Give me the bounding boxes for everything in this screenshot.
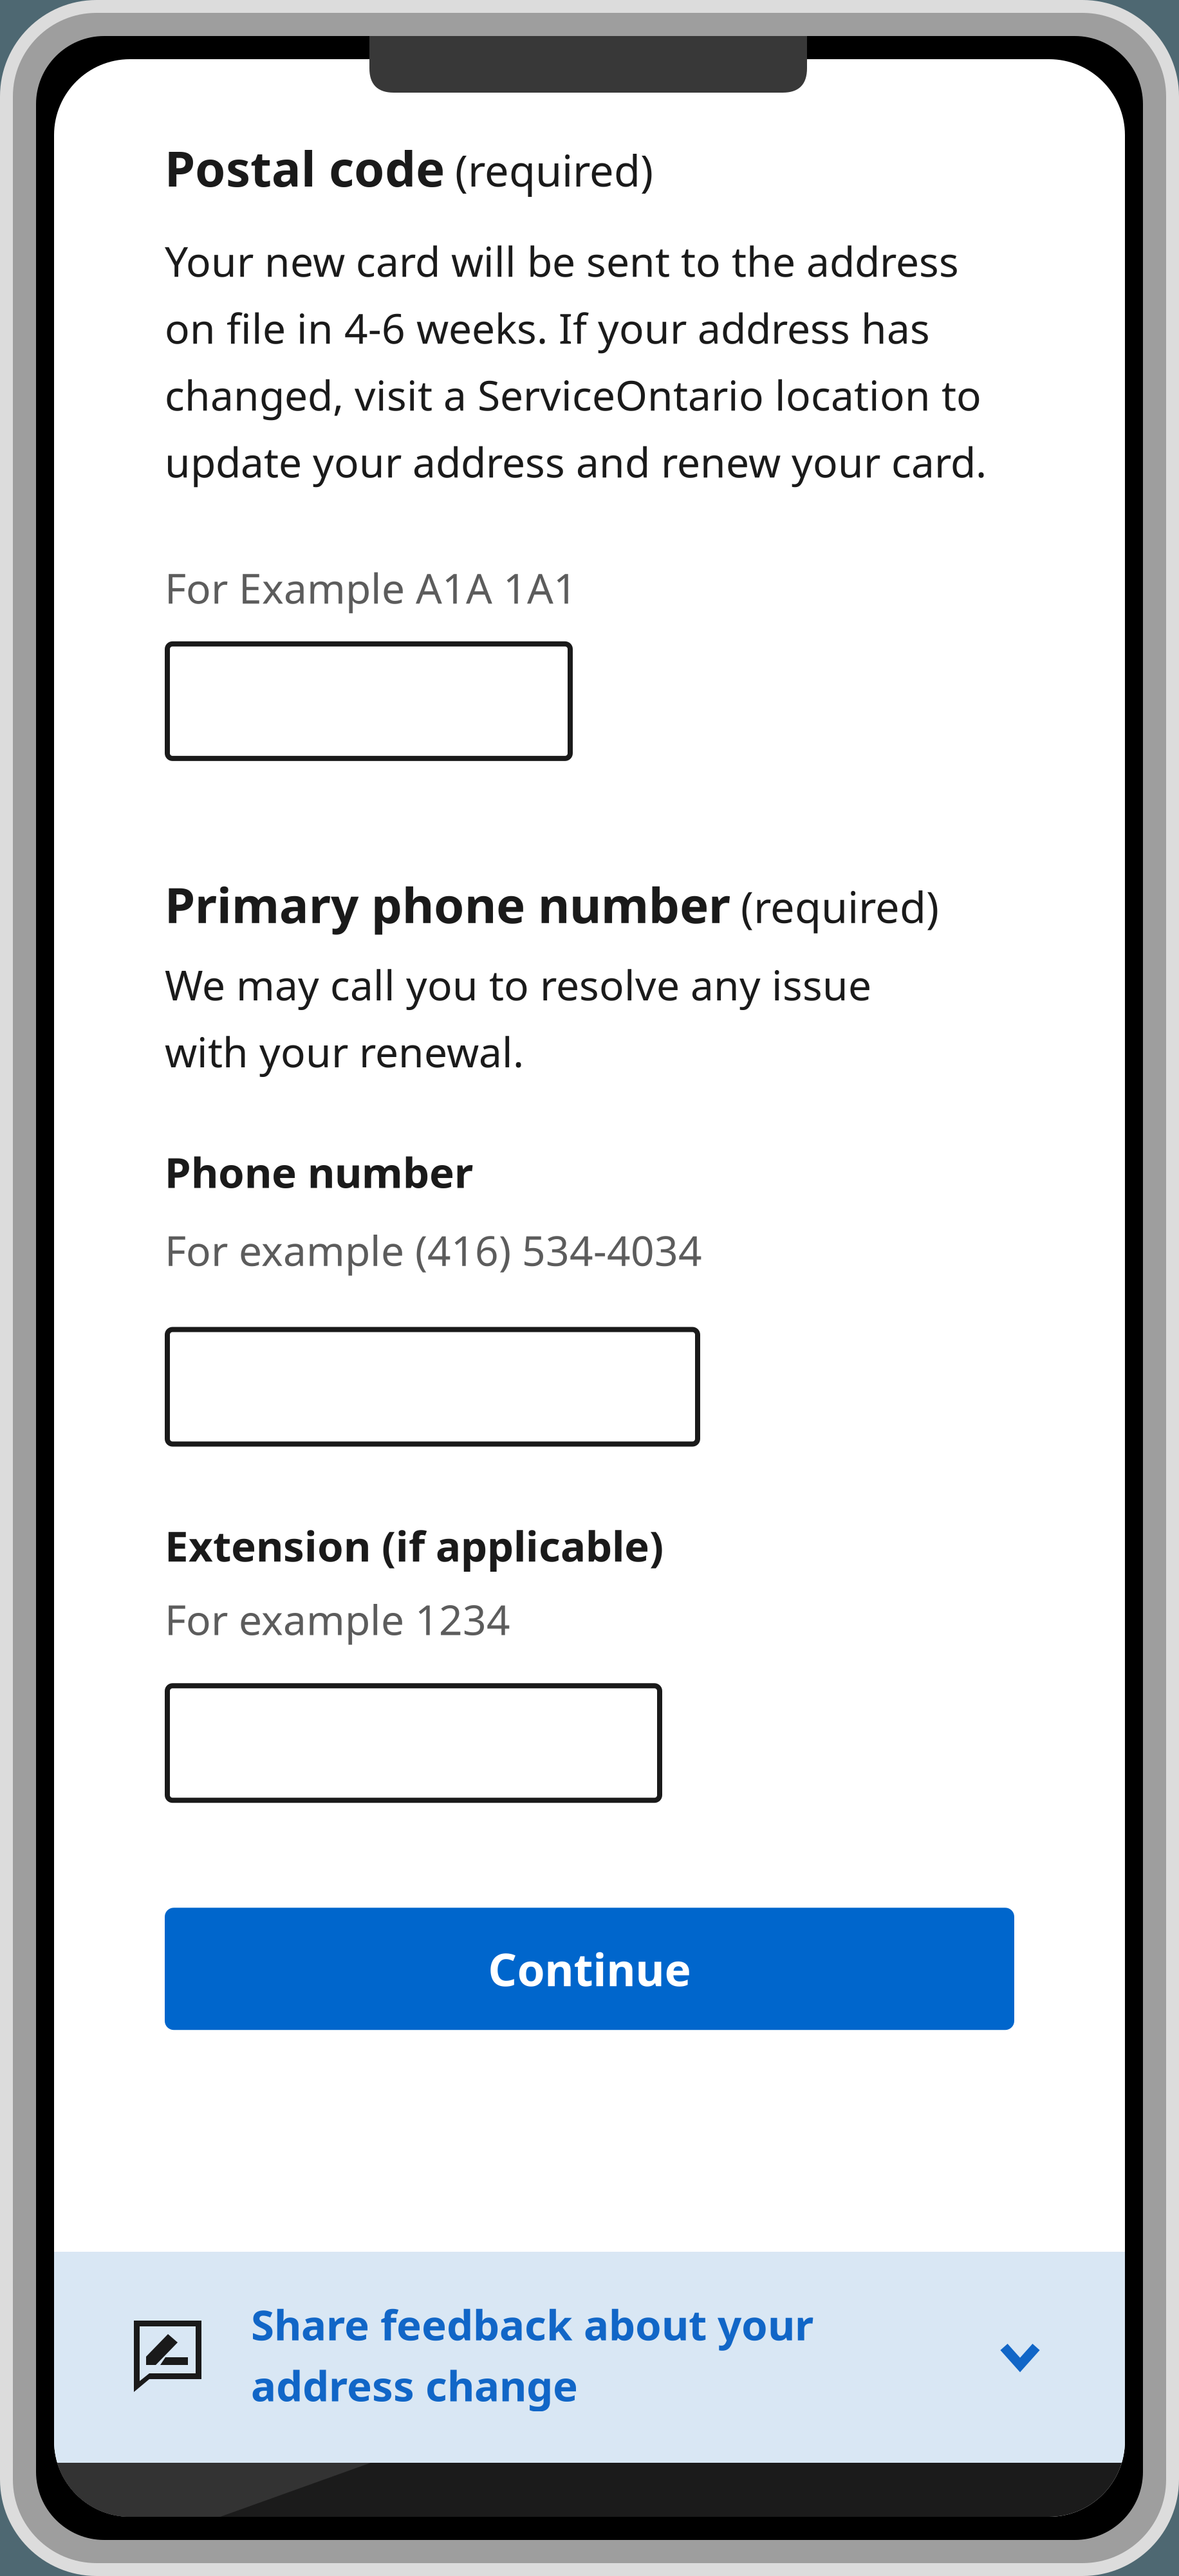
button[interactable]: Continue (165, 1908, 1014, 2030)
staticText: (required) (741, 878, 939, 935)
staticText: address change (251, 2357, 578, 2413)
button[interactable]: Share feedback about your (54, 2252, 1125, 2463)
staticText: on file in 4-6 weeks. If your address ha… (165, 300, 930, 355)
staticText: Phone number (165, 1144, 473, 1200)
staticText: We may call you to resolve any issue (165, 957, 871, 1012)
staticText: (required) (455, 141, 653, 198)
button[interactable]: Text field (165, 1327, 700, 1447)
staticText: Share feedback about your (251, 2296, 813, 2352)
staticText: For example 1234 (165, 1592, 510, 1647)
button[interactable]: Text field (165, 1683, 662, 1803)
staticText: For example (416) 534-4034 (165, 1223, 702, 1277)
staticText: changed, visit a ServiceOntario location… (165, 367, 981, 422)
button[interactable]: Text field (165, 641, 573, 761)
staticText: Extension (if applicable) (165, 1517, 664, 1573)
staticText: Continue (488, 1939, 691, 1998)
staticText: update your address and renew your card. (165, 434, 987, 489)
staticText: with your renewal. (165, 1024, 524, 1079)
staticText: Your new card will be sent to the addres… (165, 233, 959, 288)
staticText: For Example A1A 1A1 (165, 560, 577, 615)
staticText: Postal code (165, 135, 445, 200)
staticText: Primary phone number (165, 872, 730, 937)
